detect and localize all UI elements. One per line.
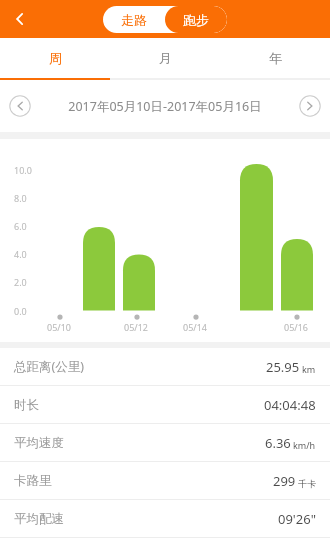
staticText: 05/16 bbox=[284, 321, 308, 333]
staticText: 时长 bbox=[14, 397, 39, 413]
button[interactable]: 走路 bbox=[103, 6, 165, 33]
button[interactable]: 月 bbox=[110, 38, 220, 78]
staticText: 6.36 bbox=[265, 434, 291, 452]
staticText: 2.0 bbox=[14, 276, 27, 288]
staticText: 05/12 bbox=[124, 321, 148, 333]
staticText: 周 bbox=[49, 50, 62, 66]
staticText: km/h bbox=[293, 439, 316, 451]
staticText: 10.0 bbox=[14, 164, 32, 176]
staticText: 05/10 bbox=[47, 321, 71, 333]
button[interactable]: 跑步 bbox=[165, 6, 227, 33]
button[interactable]: 平均速度 bbox=[0, 424, 330, 461]
staticText: 卡路里 bbox=[14, 473, 52, 489]
button[interactable]: 时长 bbox=[0, 386, 330, 423]
button[interactable]: Previous week bbox=[9, 95, 31, 117]
staticText: 跑步 bbox=[183, 12, 209, 28]
staticText: 05/14 bbox=[183, 321, 207, 333]
staticText: 299 bbox=[273, 472, 296, 490]
staticText: 2017年05月10日-2017年05月16日 bbox=[68, 98, 262, 115]
staticText: 04:04:48 bbox=[264, 396, 316, 414]
button[interactable]: Back bbox=[0, 0, 40, 38]
staticText: 8.0 bbox=[14, 192, 27, 204]
button[interactable]: Next week bbox=[299, 95, 321, 117]
staticText: 平均配速 bbox=[14, 511, 64, 527]
button[interactable]: 年 bbox=[220, 38, 330, 78]
staticText: 平均速度 bbox=[14, 435, 64, 451]
staticText: 6.0 bbox=[14, 220, 27, 232]
button[interactable]: 周 bbox=[0, 38, 110, 78]
staticText: 09'26" bbox=[278, 510, 316, 528]
staticText: 4.0 bbox=[14, 248, 27, 260]
staticText: 总距离(公里) bbox=[14, 358, 85, 375]
staticText: 25.95 bbox=[266, 358, 300, 376]
staticText: 0.0 bbox=[14, 305, 27, 317]
button[interactable]: 总距离(公里) bbox=[0, 348, 330, 385]
staticText: km bbox=[302, 363, 316, 375]
staticText: 年 bbox=[269, 50, 282, 66]
button[interactable]: 卡路里 bbox=[0, 462, 330, 499]
button[interactable]: 平均配速 bbox=[0, 500, 330, 537]
staticText: 千卡 bbox=[298, 478, 316, 489]
staticText: 月 bbox=[159, 50, 172, 66]
staticText: 走路 bbox=[121, 12, 147, 28]
